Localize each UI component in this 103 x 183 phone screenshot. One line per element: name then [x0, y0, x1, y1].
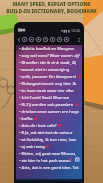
staticText: • Acla, dat is een goed idee. Tot	[19, 165, 79, 171]
staticText: • koffia	[19, 116, 33, 122]
staticText: • Rblangvei woont nog hier. Ik	[19, 81, 77, 87]
staticText: • at Gelukkig, ik ben mee, hen	[19, 137, 77, 143]
staticText: • R.Ja, wit ziet inct de natuur	[19, 130, 73, 136]
button[interactable]: More options	[76, 34, 82, 45]
staticText: MANY SPEED, REPEAT OPTIONS	[12, 1, 91, 8]
button[interactable]: Tool 0	[21, 34, 28, 45]
staticText: • woont niet in astraviging	[19, 67, 70, 73]
staticText: • Rikien, wij gaat naar Micuus,	[19, 151, 77, 157]
button[interactable]: Tool 6	[63, 34, 70, 45]
staticText: • Aciki is boefleit en Macgner	[19, 46, 75, 52]
staticText: • Acla din hert cafe?	[19, 123, 57, 129]
staticText: ▾ ▮▮ ▮ 12:34	[61, 28, 80, 33]
button[interactable]: Back	[16, 34, 21, 45]
button[interactable]: Tool 2	[35, 34, 42, 45]
button[interactable]: Tool 5	[56, 34, 63, 45]
button[interactable]: Tool 3	[42, 34, 49, 45]
staticText: • nog wel eens? Waar waren zij?	[19, 53, 80, 59]
staticText: • tu haar naak waar vier elke dag	[19, 88, 81, 94]
button[interactable]: Dictionary	[75, 157, 80, 162]
staticText: • Ichi Ceuhl Vaak! Waarom	[19, 95, 70, 101]
staticText: • drinken onze samen om hoge	[19, 109, 79, 115]
staticText: • Ri.Zij werden ook paardom	[19, 102, 74, 108]
staticText: • Bhoeflen ide ik sink stadt, Zij	[19, 60, 77, 66]
staticText: BUILD-IN DICTIONARY, BOOKMARK	[6, 8, 97, 15]
staticText: • aciik, jaeuwer Ein blangverei	[19, 74, 77, 80]
staticText: • aj ook morg	[19, 144, 45, 150]
staticText: • zie hier in het park samen	[19, 158, 72, 164]
button[interactable]: Tool 4	[49, 34, 56, 45]
button[interactable]: Tool 1	[28, 34, 35, 45]
